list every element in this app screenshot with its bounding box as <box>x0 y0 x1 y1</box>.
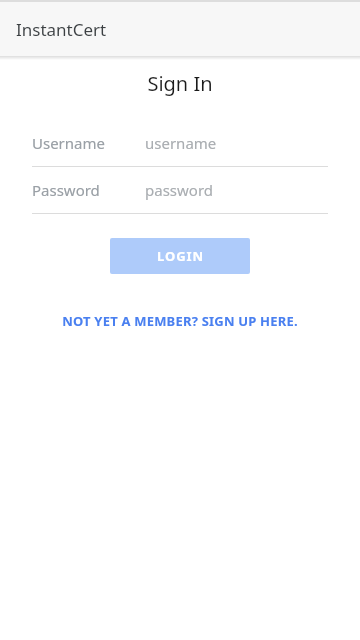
staticText: NOT YET A MEMBER? SIGN UP HERE. <box>62 312 298 330</box>
staticText: password <box>145 180 213 200</box>
button[interactable]: LOGIN <box>110 238 250 274</box>
button[interactable]: NOT YET A MEMBER? SIGN UP HERE. <box>0 312 360 330</box>
staticText: LOGIN <box>157 247 204 265</box>
staticText: Sign In <box>147 70 213 97</box>
staticText: Username <box>32 133 105 153</box>
button[interactable]: Password <box>0 167 360 213</box>
button[interactable]: Username <box>0 120 360 166</box>
staticText: InstantCert <box>16 18 107 41</box>
staticText: Password <box>32 180 100 200</box>
staticText: username <box>145 133 217 153</box>
